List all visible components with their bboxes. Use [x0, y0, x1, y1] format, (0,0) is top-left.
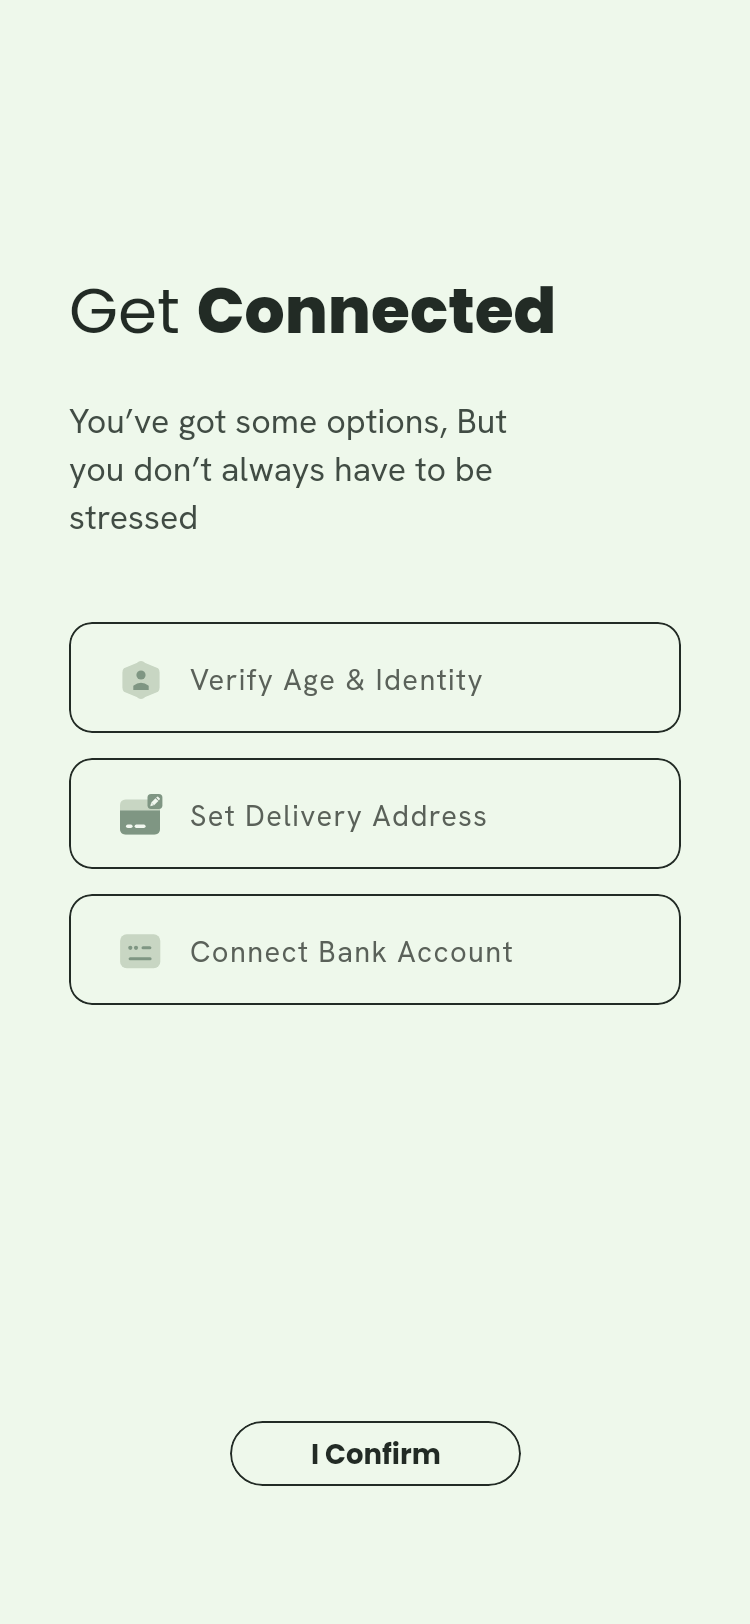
staticText: Verify Age & Identity [190, 661, 484, 699]
staticText: Get Connected [69, 267, 557, 355]
button[interactable]: Set delivery address [69, 758, 681, 869]
other: Connect bank account [119, 928, 163, 972]
button[interactable]: Connect bank account [69, 894, 681, 1005]
staticText: Connect Bank Account [190, 933, 515, 971]
staticText: You’ve got some options, But you don’t a… [69, 399, 508, 539]
staticText: I Confirm [311, 1435, 441, 1473]
staticText: Set Delivery Address [190, 797, 489, 835]
other: Verify age and identity [119, 656, 163, 700]
other: Set delivery address [119, 792, 163, 836]
button[interactable]: Verify age and identity [69, 622, 681, 733]
button[interactable]: I Confirm [230, 1421, 521, 1486]
